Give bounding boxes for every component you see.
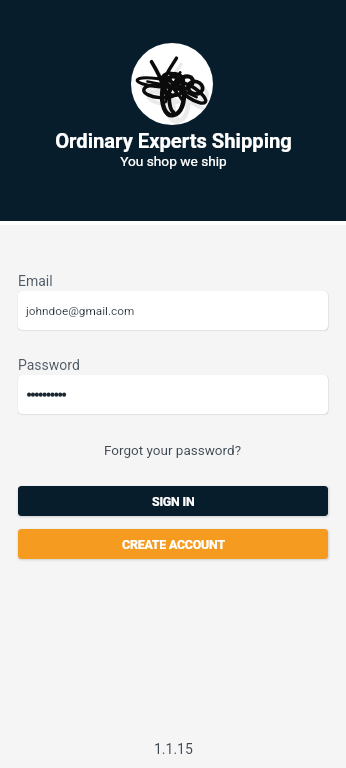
staticText: SIGN IN (152, 494, 195, 509)
staticText: CREATE ACCOUNT (122, 537, 225, 552)
staticText: Forgot your password? (104, 442, 242, 458)
staticText: You shop we ship (120, 153, 227, 169)
staticText: Ordinary Experts Shipping (55, 129, 292, 153)
staticText: 1.1.15 (154, 741, 193, 757)
button[interactable] (18, 375, 328, 414)
button[interactable]: Forgot your password? (0, 439, 346, 461)
button[interactable]: CREATE ACCOUNT (18, 529, 328, 559)
button[interactable]: johndoe@gmail.com (18, 291, 328, 330)
staticText: johndoe@gmail.com (26, 304, 135, 318)
button[interactable]: SIGN IN (18, 486, 328, 516)
staticText: Password (18, 357, 80, 373)
other: App logo (131, 43, 213, 125)
staticText: Email (18, 273, 53, 289)
